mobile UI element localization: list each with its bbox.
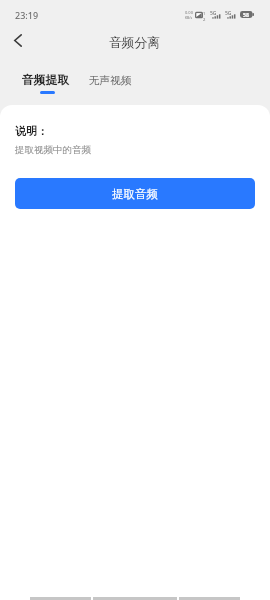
staticText: 说明：	[15, 124, 48, 138]
button[interactable]: 提取音频	[15, 178, 255, 209]
staticText: 音频提取	[22, 73, 70, 88]
staticText: 提取视频中的音频	[15, 144, 91, 156]
button[interactable]: 无声视频	[81, 66, 140, 98]
staticText: 0.00	[185, 10, 193, 15]
staticText: 5G	[210, 10, 217, 17]
button[interactable]: 音频提取	[14, 66, 78, 98]
staticText: 23:19	[15, 9, 39, 21]
staticText: 2	[203, 17, 206, 22]
staticText: 提取音频	[112, 187, 158, 201]
staticText: 1	[203, 11, 206, 17]
staticText: 音频分离	[109, 35, 161, 51]
staticText: 58	[243, 11, 249, 18]
staticText: KB/s	[185, 15, 193, 20]
button[interactable]: Back	[4, 26, 32, 54]
staticText: 无声视频	[89, 74, 132, 87]
staticText: 5G	[225, 10, 232, 17]
